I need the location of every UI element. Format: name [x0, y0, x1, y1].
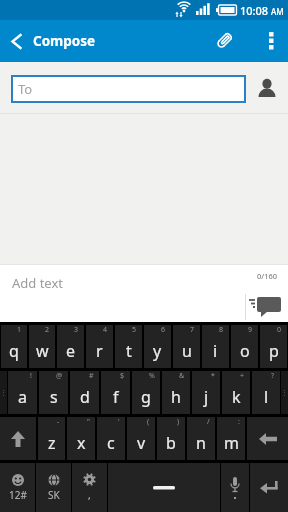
staticText: &	[179, 371, 185, 381]
staticText: '	[118, 417, 120, 427]
staticText: #	[89, 371, 94, 381]
button[interactable]: 12#	[0, 463, 35, 512]
button[interactable]: 4	[86, 325, 113, 368]
staticText: -	[57, 417, 60, 427]
button[interactable]: *	[192, 371, 220, 414]
staticText: 8	[219, 325, 224, 335]
button[interactable]: 6	[144, 325, 171, 368]
staticText: !	[30, 371, 32, 381]
staticText: 0/160	[257, 271, 278, 281]
button[interactable]: ,	[72, 463, 107, 512]
button[interactable]: !	[8, 371, 37, 414]
staticText: /	[207, 417, 210, 427]
staticText: 4	[103, 325, 108, 335]
staticText: a	[18, 386, 27, 408]
staticText: n	[196, 432, 206, 454]
button[interactable]: 8	[202, 325, 229, 368]
button[interactable]	[0, 417, 36, 460]
staticText: Compose	[33, 32, 96, 50]
staticText: z	[48, 432, 56, 454]
staticText: Add text	[12, 274, 64, 292]
staticText: ⋮	[281, 389, 288, 397]
button[interactable]: Add text	[0, 265, 288, 322]
staticText: )	[177, 417, 180, 427]
staticText: d	[80, 386, 90, 408]
staticText: x	[77, 432, 86, 454]
button[interactable]: &	[162, 371, 190, 414]
staticText: 10:08 AM	[240, 3, 284, 18]
staticText: @	[56, 371, 63, 381]
button[interactable]: /	[187, 417, 215, 460]
staticText: ⋮	[0, 389, 7, 397]
button[interactable]: 3	[57, 325, 84, 368]
staticText: c	[107, 432, 115, 454]
button[interactable]: #	[70, 371, 99, 414]
button[interactable]	[250, 463, 288, 512]
staticText: $	[120, 371, 125, 381]
staticText: 12#	[9, 488, 27, 502]
staticText: *	[211, 371, 215, 381]
staticText: l	[264, 386, 269, 408]
staticText: f	[113, 386, 119, 408]
button[interactable]	[221, 463, 249, 512]
button[interactable]	[254, 20, 288, 62]
staticText: t	[126, 340, 132, 362]
button[interactable]: Compose	[0, 20, 96, 62]
staticText: s	[50, 386, 58, 408]
button[interactable]	[247, 417, 288, 460]
staticText: SK	[48, 488, 60, 502]
button[interactable]: %	[132, 371, 160, 414]
button[interactable]: ?	[252, 371, 280, 414]
staticText: o	[240, 340, 250, 362]
button[interactable]: +	[222, 371, 250, 414]
staticText: e	[66, 340, 76, 362]
button[interactable]	[208, 25, 240, 57]
staticText: (	[147, 417, 150, 427]
button[interactable]: ⋮	[0, 371, 7, 414]
button[interactable]: SK	[36, 463, 71, 512]
button[interactable]: To	[11, 75, 246, 103]
staticText: To	[18, 80, 33, 98]
button[interactable]: $	[101, 371, 130, 414]
staticText: h	[171, 386, 181, 408]
button[interactable]	[108, 463, 220, 512]
staticText: b	[166, 432, 176, 454]
staticText: %	[149, 371, 155, 381]
button[interactable]	[246, 62, 288, 113]
staticText: :	[238, 417, 240, 427]
staticText: 7	[190, 325, 195, 335]
button[interactable]: "	[67, 417, 95, 460]
staticText: k	[232, 386, 241, 408]
staticText: 5	[132, 325, 137, 335]
staticText: r	[96, 340, 103, 362]
staticText: 6	[161, 325, 166, 335]
staticText: 9	[248, 325, 253, 335]
staticText: i	[213, 340, 218, 362]
button[interactable]: )	[157, 417, 185, 460]
button[interactable]: 9	[231, 325, 258, 368]
button[interactable]: (	[127, 417, 155, 460]
staticText: 0	[277, 325, 282, 335]
staticText: y	[153, 340, 162, 362]
button[interactable]: 7	[173, 325, 200, 368]
button[interactable]: 2	[29, 325, 55, 368]
staticText: v	[137, 432, 146, 454]
staticText: +	[240, 371, 245, 381]
staticText: ,	[88, 488, 91, 502]
staticText: 1	[17, 325, 22, 335]
button[interactable]: 0	[260, 325, 287, 368]
staticText: j	[204, 386, 209, 408]
button[interactable]: :	[217, 417, 245, 460]
button[interactable]: 5	[115, 325, 142, 368]
staticText: m	[224, 432, 239, 454]
staticText: 2	[45, 325, 50, 335]
staticText: ?	[271, 371, 275, 381]
button[interactable]: -	[38, 417, 65, 460]
staticText: u	[182, 340, 192, 362]
button[interactable]: @	[39, 371, 68, 414]
button[interactable]: 1	[1, 325, 27, 368]
staticText: 3	[74, 325, 79, 335]
staticText: q	[9, 340, 19, 362]
button[interactable]	[246, 293, 284, 319]
button[interactable]: '	[97, 417, 125, 460]
